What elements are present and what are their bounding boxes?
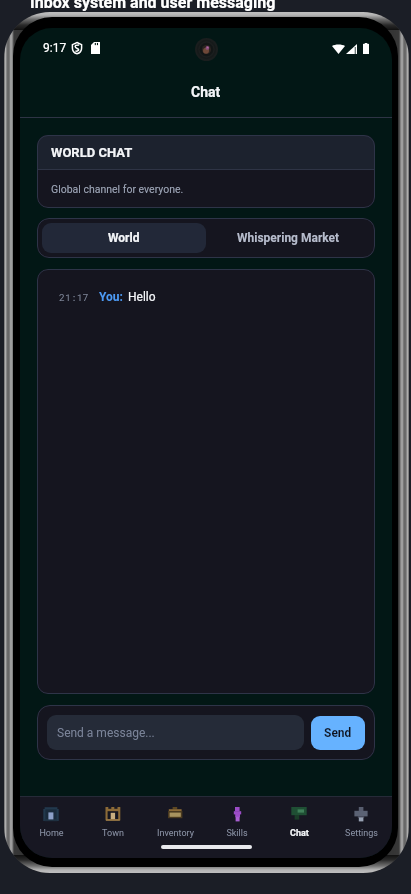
- button[interactable]: Send a message...: [47, 715, 304, 750]
- staticText: Whispering Market: [237, 231, 340, 245]
- staticText: Settings: [345, 828, 378, 839]
- button[interactable]: Whispering Market: [206, 223, 370, 253]
- staticText: Global channel for everyone.: [51, 183, 184, 195]
- button[interactable]: World: [42, 223, 206, 253]
- staticText: Inventory: [157, 828, 194, 839]
- button[interactable]: Skills: [206, 797, 268, 858]
- button[interactable]: Town: [82, 797, 144, 858]
- staticText: Town: [102, 828, 124, 839]
- button[interactable]: Settings: [330, 797, 392, 858]
- button[interactable]: Send: [311, 716, 365, 750]
- staticText: 21:17: [59, 291, 89, 304]
- staticText: Home: [39, 828, 64, 839]
- staticText: WORLD CHAT: [51, 145, 133, 160]
- staticText: You:: [99, 290, 123, 304]
- button[interactable]: Chat: [268, 797, 330, 858]
- staticText: Chat: [191, 84, 221, 100]
- staticText: Hello: [128, 290, 156, 304]
- staticText: Send: [324, 726, 352, 740]
- button[interactable]: Home: [20, 797, 82, 858]
- staticText: Chat: [290, 828, 309, 839]
- staticText: Inbox system and user messaging: [30, 0, 276, 12]
- staticText: World: [108, 231, 140, 245]
- button[interactable]: Inventory: [144, 797, 206, 858]
- button[interactable]: WORLD CHAT: [37, 135, 375, 208]
- staticText: Send a message...: [57, 726, 155, 740]
- staticText: 9:17: [43, 41, 67, 55]
- staticText: Skills: [226, 828, 248, 839]
